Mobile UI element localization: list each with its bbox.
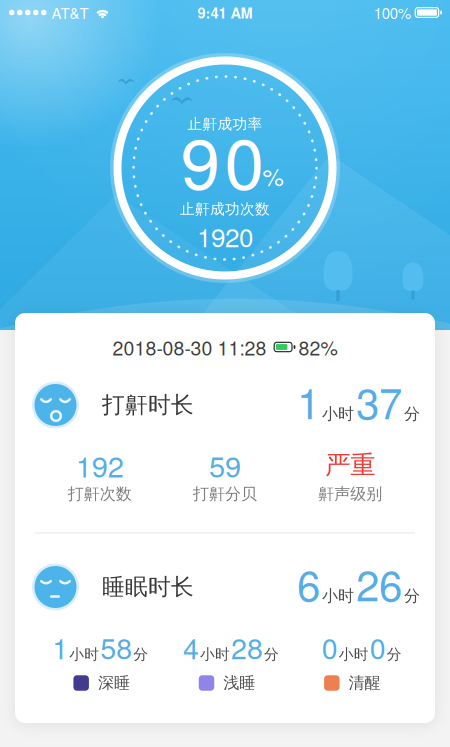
staticText: 1 (52, 627, 68, 667)
staticText: 睡眠时长 (102, 573, 194, 601)
staticText: 小时 (200, 645, 230, 663)
staticText: 浅睡 (223, 673, 255, 693)
staticText: 100% (374, 2, 411, 23)
staticText: 止鼾成功次数 (180, 200, 270, 218)
staticText: 小时 (322, 404, 354, 424)
staticText: 小时 (69, 645, 99, 663)
staticText: 9:41 AM (197, 2, 252, 23)
staticText: 小时 (339, 645, 369, 663)
staticText: 打鼾次数 (68, 484, 132, 504)
staticText: 分 (404, 404, 420, 424)
staticText: 192 (76, 444, 124, 486)
staticText: 28 (231, 627, 263, 667)
staticText: 打鼾分贝 (193, 484, 257, 504)
staticText: % (262, 159, 283, 193)
staticText: 深睡 (98, 673, 130, 693)
staticText: 37 (356, 371, 402, 431)
staticText: 分 (133, 645, 148, 663)
staticText: 分 (264, 645, 279, 663)
staticText: 4 (183, 627, 199, 667)
staticText: 82% (298, 333, 337, 361)
staticText: 清醒 (349, 673, 381, 693)
staticText: 1920 (197, 217, 253, 255)
staticText: 58 (100, 627, 132, 667)
staticText: 26 (356, 553, 402, 613)
staticText: 90 (180, 108, 263, 210)
staticText: 59 (209, 444, 241, 486)
staticText: 严重 (325, 449, 375, 480)
staticText: 分 (404, 586, 420, 606)
staticText: 2018-08-30 11:28 (113, 333, 267, 361)
staticText: 分 (387, 645, 402, 663)
staticText: 鼾声级别 (318, 484, 382, 504)
staticText: 止鼾成功率 (187, 115, 262, 133)
staticText: 小时 (322, 586, 354, 606)
staticText: 0 (370, 627, 386, 667)
staticText: 0 (322, 627, 338, 667)
staticText: 6 (297, 553, 320, 613)
staticText: 1 (297, 371, 320, 431)
staticText: 打鼾时长 (102, 391, 194, 419)
staticText: AT&T (51, 2, 88, 23)
